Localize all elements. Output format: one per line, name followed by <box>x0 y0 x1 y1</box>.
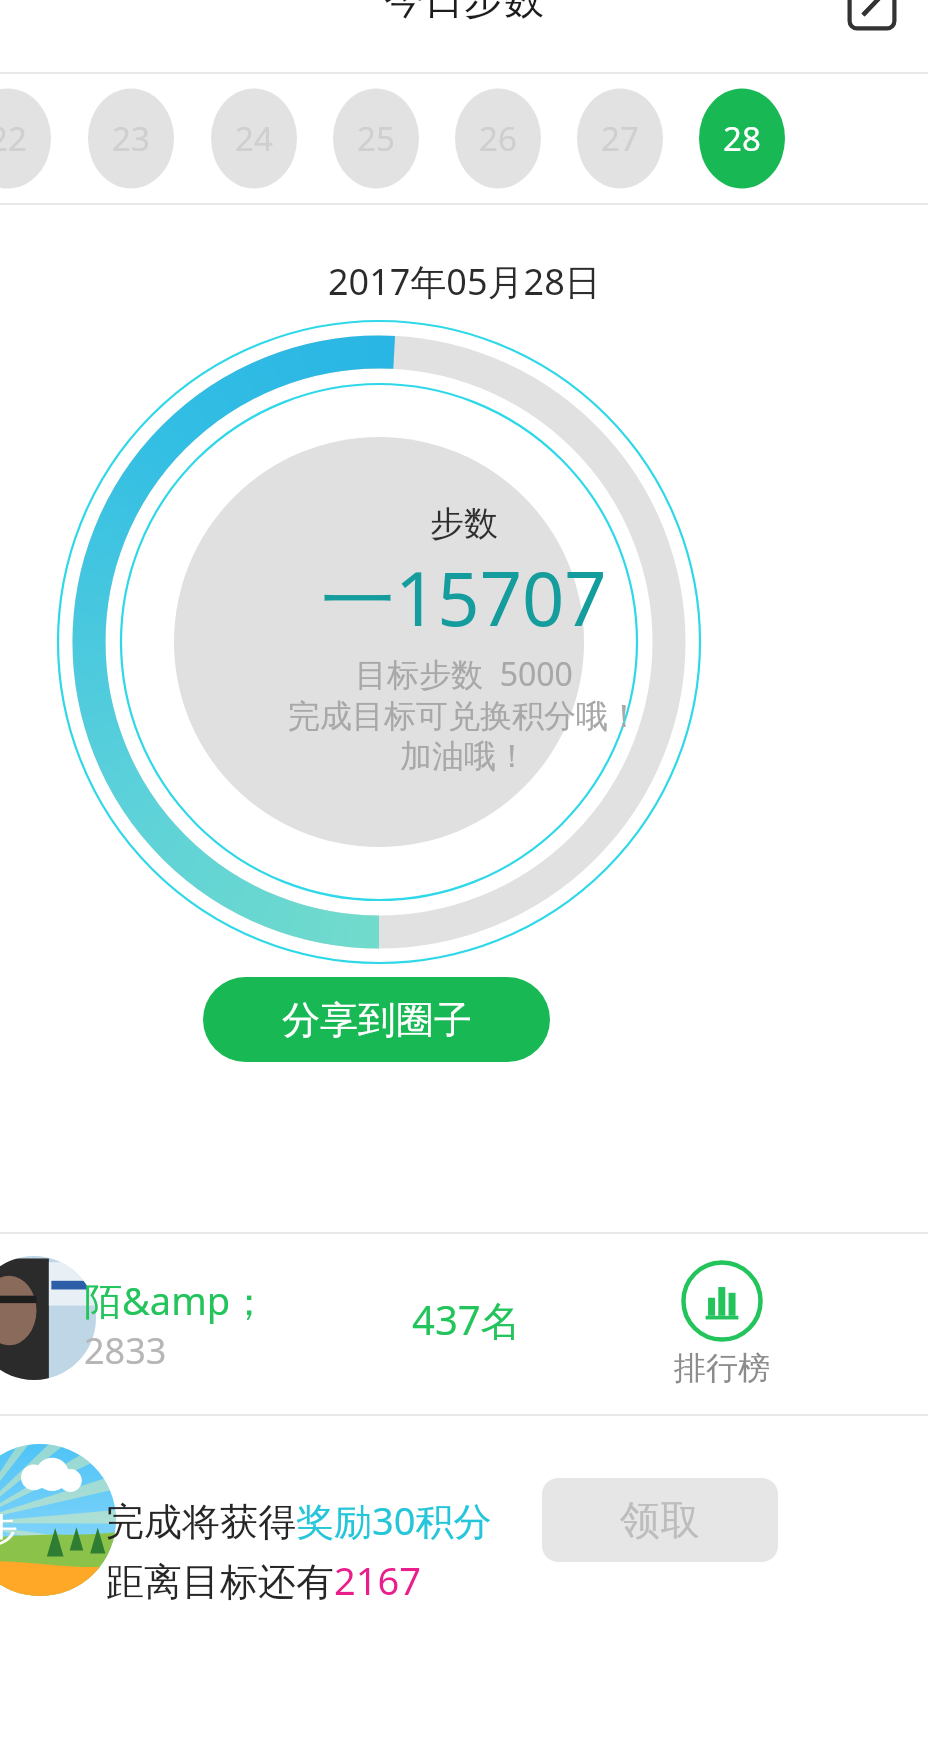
staticText: 25 <box>357 116 395 161</box>
staticText: 完成将获得奖励30积分 <box>106 1494 492 1546</box>
button[interactable]: 领取 <box>542 1478 778 1562</box>
staticText: 27 <box>601 116 639 161</box>
staticText: 2833 <box>84 1326 167 1375</box>
button[interactable]: 23 <box>88 88 174 188</box>
button[interactable]: 排行榜 <box>660 1260 784 1388</box>
staticText: 陌&amp； <box>84 1274 269 1326</box>
staticText: 24 <box>235 116 273 161</box>
button[interactable]: 25 <box>333 88 419 188</box>
staticText: 23 <box>112 116 150 161</box>
staticText: 26 <box>479 116 517 161</box>
staticText: 22 <box>0 116 27 161</box>
button[interactable]: 22 <box>0 88 51 188</box>
button[interactable]: 陌&amp； <box>0 1234 928 1414</box>
button[interactable]: 分享到圈子 <box>203 977 550 1062</box>
staticText: 2017年05月28日 <box>328 257 601 306</box>
staticText: 步数 <box>430 502 498 545</box>
button[interactable]: 编辑 <box>844 0 900 34</box>
staticText: 目标步数 5000 <box>355 652 573 696</box>
button[interactable]: 24 <box>211 88 297 188</box>
staticText: 今日步数 <box>384 0 544 24</box>
button[interactable]: 27 <box>577 88 663 188</box>
button[interactable]: 26 <box>455 88 541 188</box>
staticText: 排行榜 <box>674 1348 770 1388</box>
staticText: 437名 <box>412 1292 521 1347</box>
staticText: 距离目标还有2167 <box>106 1554 421 1606</box>
staticText: 0步 <box>0 1506 18 1552</box>
staticText: 28 <box>723 116 761 161</box>
staticText: 加油哦！ <box>400 736 528 776</box>
staticText: 完成目标可兑换积分哦！ <box>288 696 640 736</box>
staticText: 分享到圈子 <box>282 996 472 1044</box>
staticText: 一15707 <box>321 547 607 648</box>
button[interactable]: 28 <box>699 88 785 188</box>
staticText: 领取 <box>620 1495 700 1545</box>
